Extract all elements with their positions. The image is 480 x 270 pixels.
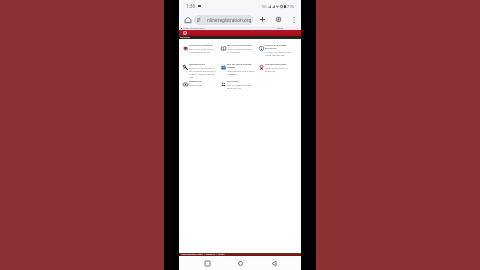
button[interactable]: New Courses Introduced (183, 44, 217, 54)
button[interactable]: Site logo (183, 31, 187, 35)
button[interactable]: New Enrollment Week (259, 63, 293, 73)
button[interactable]: Home (234, 257, 246, 269)
staticText: 71% (287, 4, 295, 9)
button[interactable]: Fall Course Catalog Ready (221, 44, 255, 54)
staticText: Career Fairs (227, 80, 239, 83)
staticText: New Enrollment Week (265, 63, 287, 66)
staticText: Apprenticeships (189, 63, 205, 66)
button[interactable]: 2025 Fall Course Schedule (221, 63, 255, 76)
staticText: Fall Course Catalog Ready (227, 44, 252, 47)
staticText: 2025 Fall Course Schedule (227, 63, 252, 66)
staticText: New Courses Introduced (189, 44, 213, 47)
button[interactable]: Back (268, 257, 280, 269)
button[interactable]: Tabs (274, 15, 283, 24)
staticText: Career Education Center | Contact us | P… (181, 253, 225, 256)
button[interactable]: New tab (258, 15, 267, 24)
button[interactable]: Program & Counseling (259, 44, 293, 57)
staticText: Learn more about the schedule & deadline… (227, 70, 255, 76)
staticText: Record Care (265, 47, 277, 50)
button[interactable]: Apprenticeships (183, 63, 217, 79)
staticText: Now accepting (189, 84, 202, 87)
button[interactable]: Career Fairs (221, 80, 255, 90)
staticText: Fall Classes (180, 36, 191, 39)
button[interactable]: More options (289, 15, 298, 24)
staticText: Limited time to register for classes fre… (265, 67, 293, 73)
staticText: Program & Counseling (265, 44, 287, 47)
staticText: Meet top employers who are hiring right … (227, 84, 255, 90)
staticText: Financial Aid (189, 80, 202, 83)
staticText: 1:36 (186, 3, 196, 9)
staticText: View the catalog and register for classe… (227, 48, 255, 54)
staticText: Sign up for a variety of new career path… (189, 48, 217, 54)
button[interactable]: Home (183, 15, 192, 24)
staticText: Search (277, 27, 283, 30)
staticText: nlineregistration.org (207, 17, 252, 23)
button[interactable]: Financial Aid (183, 80, 217, 87)
staticText: Combine on-the-job training with classro… (189, 67, 217, 79)
staticText: 5G (262, 4, 267, 9)
staticText: Updates (227, 66, 236, 69)
button[interactable]: Recent apps (201, 257, 213, 269)
staticText: At Career CEC it is easy to get started … (265, 51, 293, 57)
button[interactable]: nlineregistration.org (194, 15, 253, 25)
staticText: Career Education Center (183, 27, 205, 30)
